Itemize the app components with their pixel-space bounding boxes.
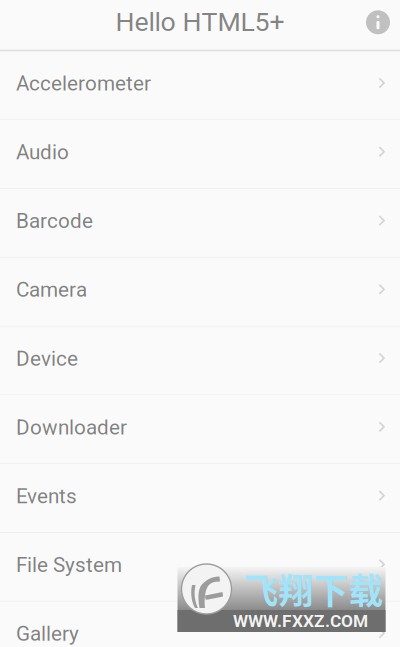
staticText: File System (16, 553, 122, 577)
staticText: 飞翔下载 (243, 564, 383, 614)
staticText: Device (16, 346, 78, 371)
button[interactable]: Accelerometer (0, 52, 400, 120)
staticText: Audio (16, 140, 69, 164)
button[interactable]: Events (0, 464, 400, 533)
staticText: Hello HTML5+ (115, 6, 284, 37)
button[interactable]: Downloader (0, 395, 400, 464)
button[interactable]: Barcode (0, 189, 400, 258)
staticText: Downloader (16, 415, 127, 439)
staticText: Camera (16, 278, 87, 302)
button[interactable]: About (366, 13, 390, 37)
button[interactable]: Gallery (0, 602, 400, 647)
staticText: Accelerometer (16, 71, 151, 96)
button[interactable]: Audio (0, 120, 400, 189)
button[interactable]: Device (0, 327, 400, 395)
button[interactable]: File System (0, 533, 400, 602)
button[interactable]: Camera (0, 258, 400, 327)
staticText: Gallery (16, 621, 79, 646)
staticText: Events (16, 484, 77, 508)
staticText: WWW.FXXZ.COM (233, 611, 368, 631)
staticText: Barcode (16, 209, 93, 233)
